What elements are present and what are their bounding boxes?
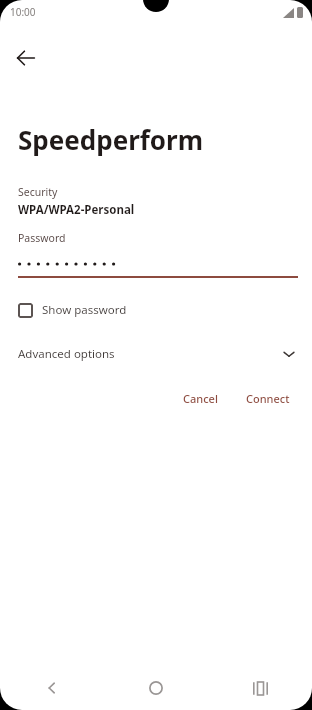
staticText: 10:00 — [10, 5, 36, 19]
staticText: Connect — [246, 391, 290, 406]
staticText: Security — [18, 185, 58, 199]
button[interactable]: Cancel — [171, 384, 230, 413]
staticText: WPA/WPA2-Personal — [18, 202, 135, 218]
staticText: Password — [18, 231, 66, 245]
staticText: Cancel — [183, 391, 218, 406]
button[interactable]: Home — [104, 666, 208, 710]
button[interactable]: Back — [6, 38, 46, 78]
button[interactable]: Recent apps — [208, 666, 312, 710]
staticText: Speedperform — [18, 122, 204, 157]
staticText: Advanced options — [18, 346, 115, 362]
button[interactable]: Connect — [234, 384, 302, 413]
button[interactable]: Back — [0, 666, 104, 710]
button[interactable] — [0, 245, 312, 278]
button[interactable]: Advanced options — [0, 342, 312, 366]
button[interactable]: Show password — [0, 300, 312, 320]
staticText: Show password — [42, 302, 127, 318]
